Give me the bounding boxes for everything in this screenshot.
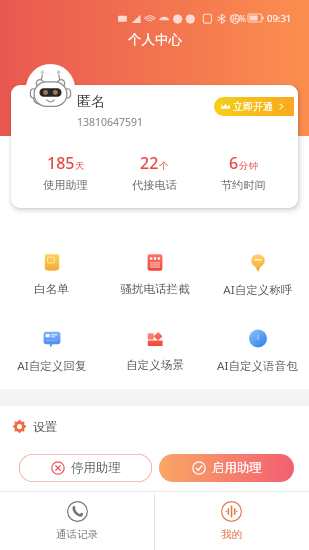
staticText: 个 — [159, 160, 169, 172]
staticText: 自定义场景 — [126, 358, 184, 373]
staticText: 天 — [75, 160, 85, 172]
staticText: 停用助理 — [71, 460, 121, 476]
button[interactable]: 骚扰电话拦截 — [103, 253, 206, 297]
staticText: 分钟 — [239, 160, 258, 172]
button[interactable]: 停用助理 — [19, 454, 152, 482]
staticText: 立即开通 — [233, 100, 273, 113]
staticText: 匿名 — [77, 93, 105, 111]
staticText: 09:31 — [267, 12, 292, 25]
staticText: 设置 — [33, 419, 57, 434]
staticText: 启用助理 — [212, 460, 262, 476]
staticText: 代接电话 — [132, 178, 177, 192]
staticText: 185 — [47, 152, 75, 174]
button[interactable]: 自定义场景 — [103, 329, 206, 373]
button[interactable]: AI自定义称呼 — [206, 253, 309, 298]
staticText: 节约时间 — [221, 178, 266, 192]
button[interactable]: 我的 — [154, 492, 309, 550]
staticText: 我的 — [221, 528, 242, 541]
staticText: 13810647591 — [77, 115, 144, 129]
staticText: 白名单 — [34, 282, 69, 297]
other: 设置 — [12, 419, 27, 434]
staticText: AI自定义称呼 — [223, 282, 293, 298]
button[interactable]: AI自定义回复 — [0, 329, 103, 374]
button[interactable]: 启用助理 — [159, 454, 294, 482]
staticText: AI自定义语音包 — [217, 358, 298, 374]
staticText: 使用助理 — [43, 178, 88, 192]
staticText: 个人中心 — [128, 31, 182, 48]
staticText: 6 — [229, 152, 239, 174]
staticText: AI自定义回复 — [17, 358, 87, 374]
button[interactable]: 白名单 — [0, 253, 103, 297]
staticText: 22 — [140, 152, 159, 174]
button[interactable]: AI自定义语音包 — [206, 329, 309, 374]
button[interactable]: 通话记录 — [0, 492, 154, 550]
staticText: 96% — [230, 13, 246, 24]
staticText: 通话记录 — [56, 528, 98, 541]
staticText: 骚扰电话拦截 — [120, 282, 190, 297]
button[interactable]: 立即开通 — [214, 97, 294, 116]
